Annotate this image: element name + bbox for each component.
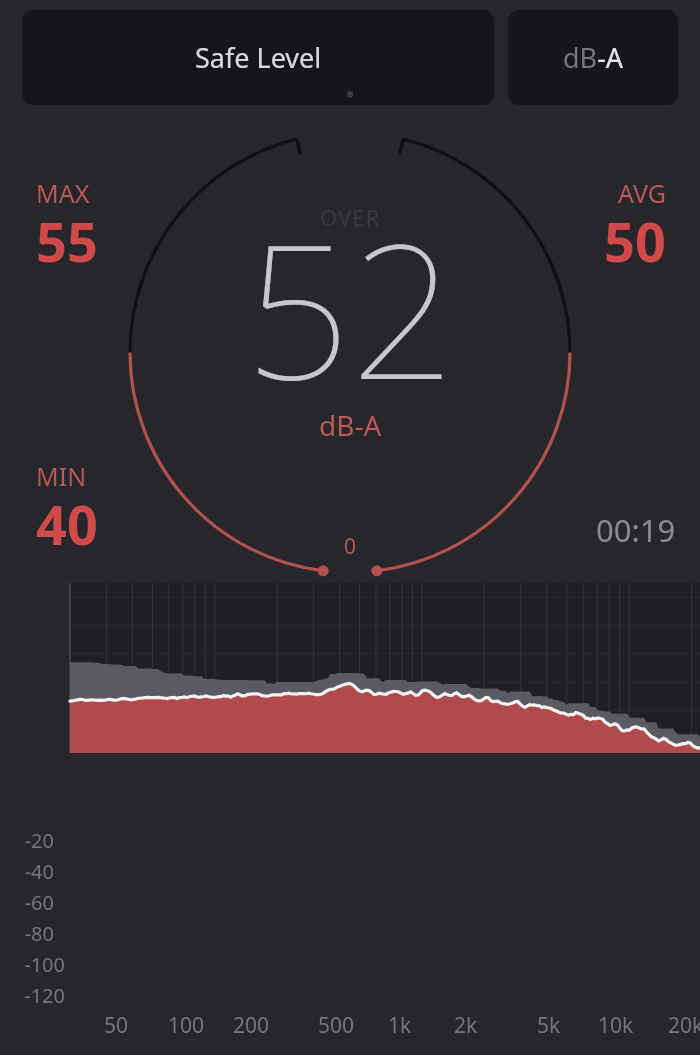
staticText: 20k: [668, 1011, 700, 1040]
staticText: Safe Level: [195, 39, 322, 76]
button[interactable]: dB-A: [508, 10, 678, 105]
staticText: MAX: [36, 176, 90, 210]
staticText: 55: [36, 204, 98, 278]
staticText: OVER: [320, 202, 381, 232]
staticText: -80: [24, 920, 54, 947]
staticText: dB-A: [319, 406, 382, 444]
staticText: 00:19: [596, 509, 676, 551]
staticText: 2k: [454, 1011, 478, 1040]
staticText: 1k: [388, 1011, 412, 1040]
staticText: 40: [36, 487, 98, 561]
staticText: -20: [24, 827, 54, 854]
staticText: 100: [168, 1011, 205, 1040]
staticText: 52: [245, 181, 456, 433]
staticText: 50: [604, 204, 666, 278]
staticText: -60: [24, 889, 54, 916]
staticText: 5k: [537, 1011, 561, 1040]
staticText: -40: [24, 858, 54, 885]
staticText: MIN: [36, 459, 87, 493]
staticText: 200: [233, 1011, 270, 1040]
staticText: -100: [24, 951, 65, 978]
button[interactable]: Safe Level: [22, 10, 494, 105]
staticText: -120: [24, 982, 65, 1009]
staticText: 0: [344, 532, 357, 561]
staticText: 500: [318, 1011, 355, 1040]
staticText: AVG: [618, 176, 666, 210]
staticText: 50: [104, 1011, 129, 1040]
staticText: 10k: [598, 1011, 634, 1040]
staticText: dB-A: [563, 39, 624, 76]
